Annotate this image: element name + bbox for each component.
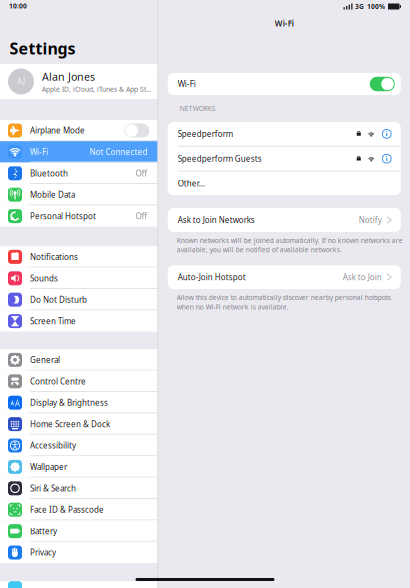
button[interactable]: General [0, 349, 157, 371]
staticText: Wi-Fi [275, 18, 294, 29]
staticText: Do Not Disturb [30, 294, 87, 305]
staticText: Wi-Fi [30, 147, 48, 157]
staticText: Known networks will be joined automatica… [177, 236, 403, 245]
button[interactable]: Accessibility [0, 435, 157, 456]
button[interactable]: Sounds [0, 268, 157, 289]
button[interactable]: Airplane Mode [0, 120, 157, 141]
button[interactable]: Bluetooth [0, 163, 157, 184]
staticText: Control Centre [30, 376, 86, 387]
staticText: Notifications [30, 252, 78, 262]
button[interactable]: Display & Brightness [0, 392, 157, 413]
staticText: 100% [367, 2, 385, 11]
staticText: Battery [30, 526, 57, 536]
button[interactable]: Wi-Fi [0, 141, 157, 163]
staticText: Ask to Join [343, 272, 382, 282]
staticText: Speedperform Guests [178, 153, 262, 164]
staticText: AJ [17, 76, 25, 87]
button[interactable]: Personal Hotspot [0, 205, 157, 227]
button[interactable]: Siri & Search [0, 478, 157, 499]
staticText: Off [135, 211, 147, 221]
staticText: Ask to Join Networks [178, 215, 255, 225]
staticText: Other… [178, 178, 205, 189]
staticText: Accessibility [30, 440, 76, 451]
button[interactable]: Screen Time [0, 310, 157, 332]
staticText: Allow this device to automatically disco… [177, 293, 391, 302]
staticText: Not Connected [89, 147, 147, 157]
button[interactable]: Ask to Join Networks [168, 208, 401, 232]
staticText: General [30, 355, 60, 365]
button[interactable]: Home Screen & Dock [0, 413, 157, 435]
button[interactable]: Speedperform [168, 122, 401, 146]
staticText: Sounds [30, 273, 58, 284]
staticText: Apple ID, iCloud, iTunes & App St… [42, 85, 151, 94]
button[interactable]: Battery [0, 520, 157, 542]
button[interactable]: Speedperform Guests [168, 147, 401, 171]
staticText: NETWORKS [180, 104, 216, 113]
staticText: Siri & Search [30, 483, 76, 494]
staticText: Alan Jones [42, 69, 95, 84]
staticText: Bluetooth [30, 168, 68, 179]
staticText: Auto-Join Hotspot [178, 272, 246, 282]
staticText: when no Wi-Fi network is available. [177, 302, 289, 311]
staticText: 10:00 [9, 2, 27, 10]
staticText: Personal Hotspot [30, 211, 96, 221]
staticText: Speedperform [178, 129, 233, 139]
staticText: Wallpaper [30, 462, 67, 472]
staticText: Display & Brightness [30, 397, 108, 408]
button[interactable]: Privacy [0, 542, 157, 563]
staticText: Airplane Mode [30, 125, 85, 136]
staticText: Mobile Data [30, 189, 75, 200]
button[interactable]: Face ID & Passcode [0, 499, 157, 520]
staticText: Wi-Fi [178, 79, 196, 89]
staticText: Screen Time [30, 316, 76, 326]
button[interactable]: Do Not Disturb [0, 289, 157, 310]
staticText: Settings [9, 38, 75, 59]
button[interactable]: Auto-Join Hotspot [168, 265, 401, 289]
staticText: Notify [359, 215, 382, 225]
button[interactable]: Mobile Data [0, 184, 157, 205]
button[interactable]: Notifications [0, 246, 157, 268]
button[interactable]: Wallpaper [0, 456, 157, 478]
button[interactable]: Control Centre [0, 371, 157, 392]
staticText: Off [135, 168, 147, 179]
staticText: Home Screen & Dock [30, 419, 110, 429]
staticText: Privacy [30, 547, 56, 558]
staticText: 3G [355, 2, 364, 11]
staticText: available, you will be notified of avail… [177, 245, 342, 254]
button[interactable]: AJ [0, 64, 157, 99]
button[interactable]: Other… [168, 172, 401, 195]
staticText: Face ID & Passcode [30, 504, 104, 515]
